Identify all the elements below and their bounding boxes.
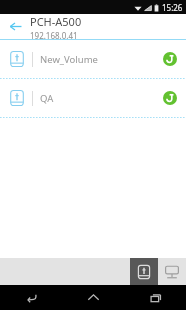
staticText: 15:26 [162,2,183,13]
button[interactable]: QA [0,79,186,117]
button[interactable]: Eject QA [163,91,177,105]
button[interactable]: Volumes tab [130,258,158,285]
button[interactable]: Back [0,14,30,39]
staticText: New_Volume [40,53,163,66]
button[interactable]: Home [62,285,124,310]
staticText: 192.168.0.41 [30,30,78,39]
button[interactable]: Eject New_Volume [163,52,177,66]
staticText: PCH-A500 [30,14,82,29]
button[interactable]: Recents [124,285,186,310]
button[interactable]: Back [0,285,62,310]
staticText: QA [40,92,163,105]
button[interactable]: Computers tab [158,258,186,285]
button[interactable]: New_Volume [0,40,186,78]
